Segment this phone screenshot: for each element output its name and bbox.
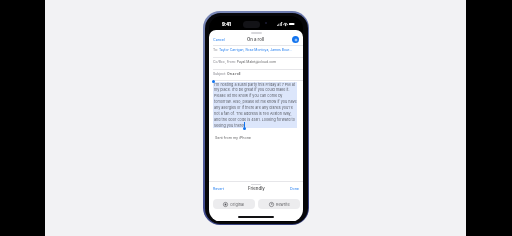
staticText: Sent from my iPhone bbox=[215, 135, 251, 139]
staticText: Original bbox=[230, 202, 245, 207]
staticText: To: Taylor Carrigan, Rose Montoya, James… bbox=[213, 48, 292, 52]
button[interactable]: Send bbox=[292, 36, 299, 43]
button[interactable]: Original bbox=[213, 199, 255, 209]
staticText: Friendly bbox=[248, 186, 265, 191]
staticText: Rewrite bbox=[276, 202, 290, 207]
staticText: 9:41 bbox=[222, 22, 231, 27]
staticText: Subject: On a roll bbox=[213, 72, 241, 76]
staticText: On a roll bbox=[247, 37, 265, 42]
staticText: I'm hosting a sushi party this Friday at… bbox=[214, 82, 298, 128]
button[interactable]: Revert bbox=[213, 187, 224, 191]
button[interactable]: Rewrite bbox=[258, 199, 300, 209]
staticText: Cc/Bcc, From: Payal.Malet@icloud.com bbox=[213, 60, 277, 64]
button[interactable]: Cancel bbox=[213, 38, 225, 42]
button[interactable]: Done bbox=[290, 187, 299, 191]
